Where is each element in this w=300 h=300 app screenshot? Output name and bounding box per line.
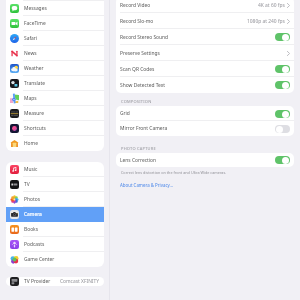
button[interactable]: Music [6, 162, 104, 177]
button[interactable]: Mail [6, 0, 104, 1]
staticText: Comcast XFINITY [60, 278, 100, 285]
staticText: Photos [24, 196, 41, 203]
button[interactable]: Maps [6, 91, 104, 106]
button[interactable]: Safari [6, 31, 104, 46]
button[interactable]: TV Provider [6, 277, 104, 286]
staticText: Camera [24, 211, 42, 218]
button[interactable]: Mirror Front Camera [116, 121, 294, 136]
staticText: Record Video [120, 2, 151, 9]
button[interactable]: Off [275, 125, 290, 133]
button[interactable]: On [275, 156, 290, 164]
staticText: Correct lens distortion on the front and… [121, 170, 227, 175]
staticText: Safari [24, 35, 38, 42]
staticText: PHOTO CAPTURE [121, 146, 156, 151]
button[interactable]: Record Slo-mo [116, 13, 294, 29]
staticText: Maps [24, 95, 37, 102]
staticText: Books [24, 226, 39, 233]
button[interactable]: FaceTime [6, 16, 104, 31]
button[interactable]: Show Detected Text [116, 77, 294, 93]
button[interactable]: On [275, 33, 290, 41]
button[interactable]: Photos [6, 192, 104, 207]
staticText: Record Stereo Sound [120, 34, 169, 41]
staticText: Translate [24, 80, 46, 87]
staticText: Lens Correction [120, 157, 157, 164]
staticText: COMPOSITION [121, 99, 152, 104]
staticText: Game Center [24, 256, 55, 263]
staticText: Mirror Front Camera [120, 125, 168, 132]
staticText: TV Provider [24, 278, 51, 285]
staticText: FaceTime [24, 20, 46, 27]
staticText: 1080p at 240 fps [247, 18, 285, 25]
staticText: News [24, 50, 37, 57]
staticText: Podcasts [24, 241, 45, 248]
staticText: Music [24, 166, 38, 173]
button[interactable]: TV [6, 177, 104, 192]
staticText: Messages [24, 5, 47, 12]
button[interactable]: Messages [6, 1, 104, 16]
button[interactable]: Grid [116, 106, 294, 121]
staticText: Grid [120, 110, 130, 117]
button[interactable]: Camera [6, 207, 104, 222]
staticText: Measure [24, 110, 44, 117]
staticText: Preserve Settings [120, 50, 160, 57]
button[interactable]: Game Center [6, 252, 104, 267]
button[interactable]: Home [6, 136, 104, 151]
staticText: Home [24, 140, 38, 147]
staticText: Scan QR Codes [120, 66, 155, 73]
button[interactable]: On [275, 65, 290, 73]
button[interactable]: On [275, 81, 290, 89]
button[interactable]: Scan QR Codes [116, 61, 294, 77]
button[interactable]: Record Video [116, 0, 294, 13]
button[interactable]: About Camera & Privacy... [120, 182, 174, 188]
button[interactable]: Translate [6, 76, 104, 91]
button[interactable]: Weather [6, 61, 104, 76]
staticText: Weather [24, 65, 44, 72]
staticText: Show Detected Text [120, 82, 166, 89]
staticText: 4K at 60 fps [258, 2, 285, 9]
button[interactable]: Shortcuts [6, 121, 104, 136]
button[interactable]: Preserve Settings [116, 45, 294, 61]
button[interactable]: News [6, 46, 104, 61]
button[interactable]: Podcasts [6, 237, 104, 252]
button[interactable]: Books [6, 222, 104, 237]
staticText: Shortcuts [24, 125, 46, 132]
button[interactable]: Lens Correction [116, 153, 294, 167]
button[interactable]: Measure [6, 106, 104, 121]
staticText: Record Slo-mo [120, 18, 154, 25]
button[interactable]: Record Stereo Sound [116, 29, 294, 45]
staticText: TV [24, 181, 30, 188]
button[interactable]: On [275, 110, 290, 118]
